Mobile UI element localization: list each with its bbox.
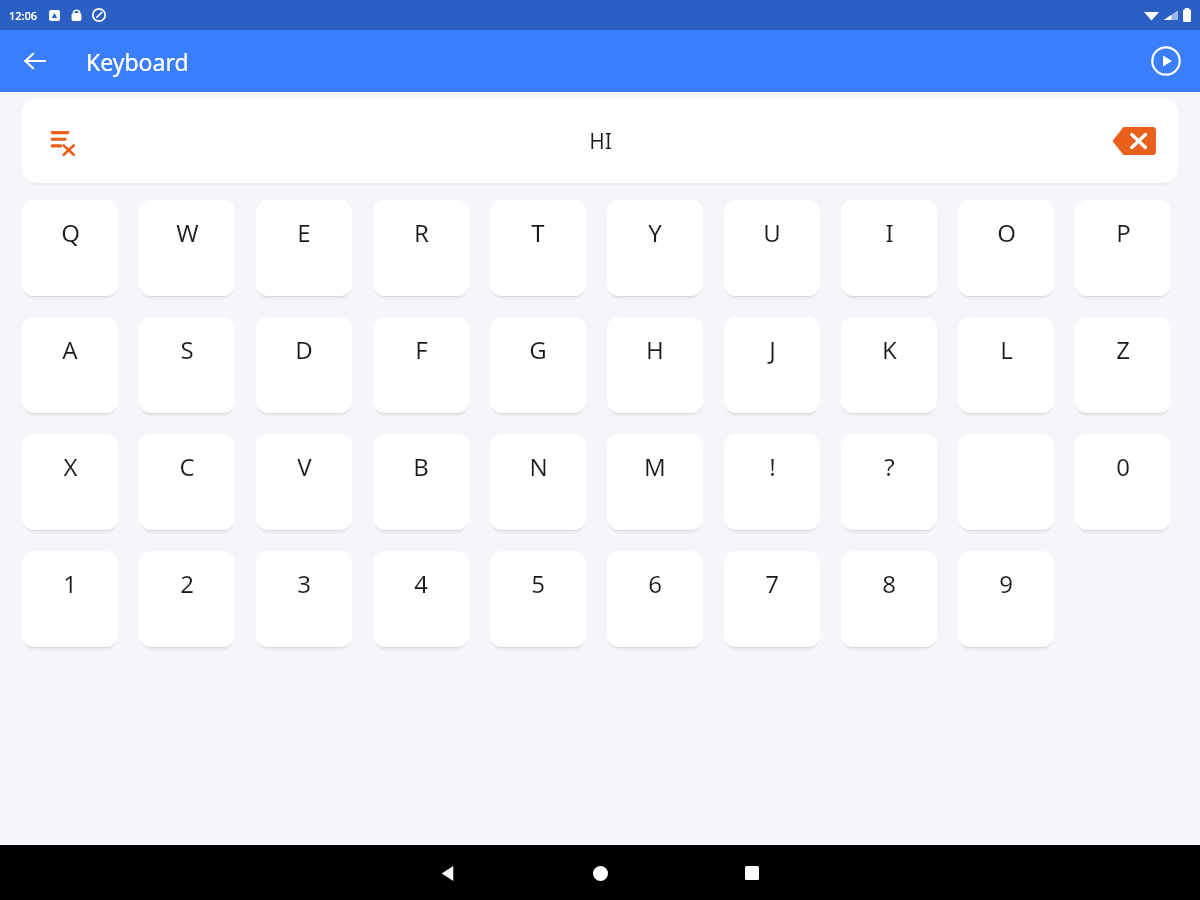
staticText: O	[997, 216, 1016, 249]
button[interactable]: P	[1075, 200, 1171, 296]
staticText: Keyboard	[86, 46, 189, 77]
staticText: 5	[531, 567, 545, 600]
staticText: I	[885, 216, 894, 249]
staticText: 3	[297, 567, 311, 600]
button[interactable]: J	[724, 317, 820, 413]
staticText: Q	[61, 216, 80, 249]
button[interactable]: ?	[841, 434, 937, 530]
staticText: V	[297, 450, 312, 483]
button[interactable]: 7	[724, 551, 820, 647]
button[interactable]: W	[139, 200, 235, 296]
button[interactable]: !	[724, 434, 820, 530]
button[interactable]: 1	[22, 551, 118, 647]
button[interactable]: 6	[607, 551, 703, 647]
staticText: R	[414, 216, 429, 249]
staticText: HI	[589, 127, 612, 156]
staticText: !	[769, 450, 776, 483]
button[interactable]: N	[490, 434, 586, 530]
staticText: 6	[648, 567, 662, 600]
button[interactable]: Back	[425, 850, 471, 896]
staticText: 0	[1116, 450, 1130, 483]
staticText: M	[644, 450, 666, 483]
button[interactable]: Play	[1142, 37, 1190, 85]
button[interactable]: F	[373, 317, 469, 413]
staticText: Y	[648, 216, 662, 249]
staticText: 1	[63, 567, 77, 600]
staticText: T	[531, 216, 545, 249]
staticText: F	[415, 333, 428, 366]
button[interactable]: V	[256, 434, 352, 530]
button[interactable]: 3	[256, 551, 352, 647]
button[interactable]: Home	[577, 850, 623, 896]
staticText: J	[769, 333, 776, 366]
button[interactable]: G	[490, 317, 586, 413]
staticText: 9	[999, 567, 1013, 600]
button[interactable]: Recents	[729, 850, 775, 896]
staticText: U	[763, 216, 781, 249]
staticText: 7	[765, 567, 779, 600]
button[interactable]: U	[724, 200, 820, 296]
staticText: ?	[884, 450, 895, 483]
staticText: E	[297, 216, 311, 249]
button[interactable]: Z	[1075, 317, 1171, 413]
button[interactable]: T	[490, 200, 586, 296]
button[interactable]: A	[22, 317, 118, 413]
staticText: B	[413, 450, 429, 483]
button[interactable]: X	[22, 434, 118, 530]
button[interactable]: 2	[139, 551, 235, 647]
staticText: A	[62, 333, 78, 366]
button[interactable]: C	[139, 434, 235, 530]
button[interactable]: S	[139, 317, 235, 413]
staticText: 2	[180, 567, 194, 600]
button[interactable]: K	[841, 317, 937, 413]
staticText: X	[63, 450, 78, 483]
staticText: K	[882, 333, 897, 366]
button[interactable]: Back	[14, 40, 56, 82]
staticText: 12:06	[9, 8, 38, 23]
staticText: P	[1116, 216, 1131, 249]
button[interactable]: B	[373, 434, 469, 530]
button[interactable]: R	[373, 200, 469, 296]
button[interactable]: L	[958, 317, 1054, 413]
button[interactable]: Y	[607, 200, 703, 296]
staticText: 4	[414, 567, 428, 600]
staticText: S	[180, 333, 194, 366]
button[interactable]: I	[841, 200, 937, 296]
button[interactable]: 5	[490, 551, 586, 647]
button[interactable]: E	[256, 200, 352, 296]
staticText: N	[529, 450, 548, 483]
button[interactable]: 4	[373, 551, 469, 647]
button[interactable]: O	[958, 200, 1054, 296]
button[interactable]: M	[607, 434, 703, 530]
button[interactable]: 0	[1075, 434, 1171, 530]
button[interactable]: D	[256, 317, 352, 413]
staticText: L	[1000, 333, 1013, 366]
button[interactable]: Backspace	[1108, 115, 1160, 167]
button[interactable]: Clear all	[22, 99, 1178, 183]
button[interactable]: 8	[841, 551, 937, 647]
staticText: W	[176, 216, 199, 249]
staticText: H	[646, 333, 664, 366]
staticText: Z	[1116, 333, 1130, 366]
staticText: D	[295, 333, 313, 366]
button[interactable]: Q	[22, 200, 118, 296]
button[interactable]: 9	[958, 551, 1054, 647]
button[interactable]: Clear all	[40, 119, 84, 163]
button[interactable]: H	[607, 317, 703, 413]
staticText: 8	[882, 567, 896, 600]
staticText: G	[529, 333, 547, 366]
staticText: C	[179, 450, 195, 483]
